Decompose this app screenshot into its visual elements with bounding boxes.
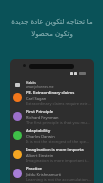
staticText: Albert Einstein: [26, 153, 54, 158]
staticText: www.johannes.me: [26, 85, 54, 89]
staticText: Practice: [26, 166, 42, 172]
staticText: Charles Darwin: [26, 134, 55, 139]
button[interactable]: Imagination is more importa: [10, 145, 94, 164]
staticText: Imagination is more importa: [26, 147, 84, 153]
staticText: وتكون محصولا: [31, 29, 73, 39]
staticText: The first principle is that you must not…: [26, 120, 91, 125]
button[interactable]: Adaptability: [10, 126, 94, 145]
staticText: Learning is not the accumulation of know…: [26, 177, 91, 182]
staticText: First Principle: [26, 109, 54, 115]
staticText: PE. Extraordinary claims: [26, 90, 75, 96]
staticText: Adaptability: [26, 128, 51, 134]
button[interactable]: PE. Extraordinary claims: [10, 88, 94, 107]
button[interactable]: First Principle: [10, 107, 94, 126]
staticText: Extraordinary claims require extraordina…: [26, 101, 91, 106]
staticText: Jiddu Krishnamurti: [26, 172, 62, 177]
staticText: ما تحتاجه لتكوين عادة جديدة: [11, 17, 93, 27]
staticText: Richard Feynman: [26, 115, 59, 120]
staticText: Imagination is more important than knowl…: [26, 158, 91, 163]
staticText: Carl Sagan: [26, 96, 47, 101]
staticText: Habits: [26, 81, 36, 85]
button[interactable]: Practice: [10, 164, 94, 183]
staticText: It is not the strongest of the species t…: [26, 139, 91, 144]
